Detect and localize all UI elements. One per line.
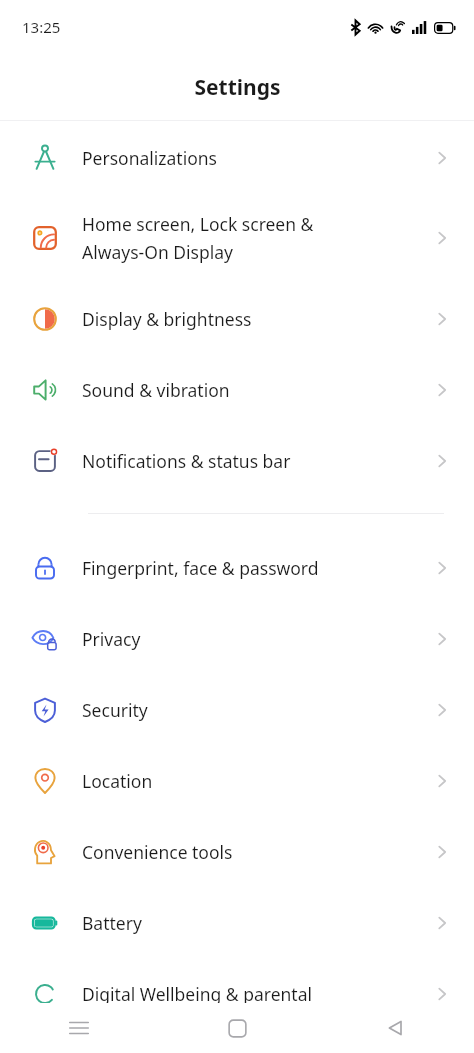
button[interactable]: Privacy (0, 603, 474, 674)
staticText: Convenience tools (82, 840, 434, 864)
staticText: Digital Wellbeing & parental (82, 982, 434, 1006)
staticText: Location (82, 769, 434, 793)
staticText: Fingerprint, face & password (82, 556, 434, 580)
button[interactable]: Location (0, 745, 474, 816)
staticText: Display & brightness (82, 307, 434, 331)
staticText: Home screen, Lock screen & (82, 212, 314, 236)
staticText: Personalizations (82, 146, 434, 170)
staticText: Settings (194, 73, 281, 102)
button[interactable]: Convenience tools (0, 816, 474, 887)
button[interactable]: Fingerprint, face & password (0, 532, 474, 603)
button[interactable]: Home screen, Lock screen & (0, 193, 474, 283)
staticText: Security (82, 698, 434, 722)
button[interactable]: Battery (0, 887, 474, 958)
button[interactable]: Recent apps (0, 1003, 158, 1053)
button[interactable]: Back (316, 1003, 474, 1053)
staticText: Privacy (82, 627, 434, 651)
staticText: Notifications & status bar (82, 449, 434, 473)
button[interactable]: Notifications & status bar (0, 425, 474, 496)
button[interactable]: Personalizations (0, 122, 474, 193)
staticText: Always-On Display (82, 240, 233, 264)
button[interactable]: Security (0, 674, 474, 745)
button[interactable]: Home (158, 1003, 316, 1053)
button[interactable]: Sound & vibration (0, 354, 474, 425)
staticText: Sound & vibration (82, 378, 434, 402)
button[interactable]: Digital Wellbeing & parental (0, 958, 474, 1029)
button[interactable]: Display & brightness (0, 283, 474, 354)
staticText: 13:25 (22, 17, 61, 37)
staticText: Battery (82, 911, 434, 935)
